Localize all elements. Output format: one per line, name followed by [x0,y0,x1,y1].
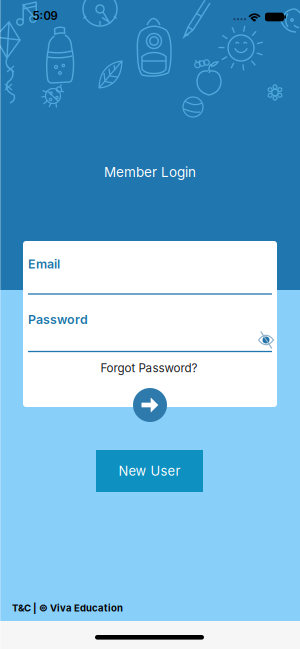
button[interactable]: T&C | © Viva Education [12,602,123,614]
staticText: New User [118,463,180,479]
staticText: T&C | © Viva Education [12,602,123,614]
button[interactable]: Forgot Password? [94,357,203,379]
staticText: Member Login [104,164,196,180]
button[interactable]: New User [96,450,203,492]
staticText: Password [28,312,88,327]
button[interactable]: Show password [254,330,278,350]
staticText: Forgot Password? [100,361,197,375]
staticText: Email [28,256,60,271]
textField[interactable] [28,268,272,298]
secureTextField[interactable] [28,325,248,355]
button[interactable]: Log in [133,388,167,422]
staticText: 5:09 [32,9,57,23]
